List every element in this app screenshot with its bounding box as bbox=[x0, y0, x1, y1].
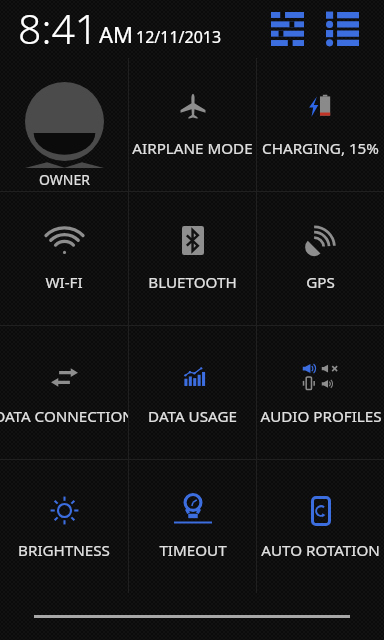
staticText: BRIGHTNESS bbox=[18, 540, 110, 561]
button[interactable]: AIRPLANE MODE bbox=[129, 58, 256, 191]
button[interactable]: WI-FI bbox=[0, 192, 128, 325]
button[interactable]: Notifications bbox=[315, 4, 370, 54]
button[interactable]: DATA USAGE bbox=[129, 326, 256, 459]
button[interactable]: BLUETOOTH bbox=[129, 192, 256, 325]
staticText: DATA CONNECTION bbox=[0, 406, 128, 427]
staticText: 12/11/2013 bbox=[136, 26, 222, 48]
staticText: GPS bbox=[306, 272, 335, 293]
staticText: DATA USAGE bbox=[148, 406, 237, 427]
staticText: AUTO ROTATION bbox=[261, 540, 380, 561]
button[interactable]: AUTO ROTATION bbox=[257, 460, 384, 593]
button[interactable]: Quick settings bbox=[260, 4, 315, 54]
staticText: CHARGING, 15% bbox=[262, 138, 379, 159]
button[interactable]: CHARGING, 15% bbox=[257, 58, 384, 191]
button[interactable]: TIMEOUT bbox=[129, 460, 256, 593]
staticText: OWNER bbox=[39, 170, 90, 189]
staticText: AUDIO PROFILES bbox=[260, 406, 382, 427]
button[interactable]: BRIGHTNESS bbox=[0, 460, 128, 593]
staticText: 8:41 bbox=[18, 0, 99, 56]
staticText: AIRPLANE MODE bbox=[132, 138, 253, 159]
button[interactable]: DATA CONNECTION bbox=[0, 326, 128, 459]
staticText: BLUETOOTH bbox=[148, 272, 237, 293]
button[interactable]: AUDIO PROFILES bbox=[257, 326, 384, 459]
staticText: TIMEOUT bbox=[159, 540, 227, 561]
staticText: AM bbox=[99, 19, 134, 49]
button[interactable]: OWNER bbox=[0, 58, 128, 191]
button[interactable]: Close quick settings bbox=[0, 593, 384, 640]
staticText: WI-FI bbox=[45, 272, 83, 293]
button[interactable]: GPS bbox=[257, 192, 384, 325]
